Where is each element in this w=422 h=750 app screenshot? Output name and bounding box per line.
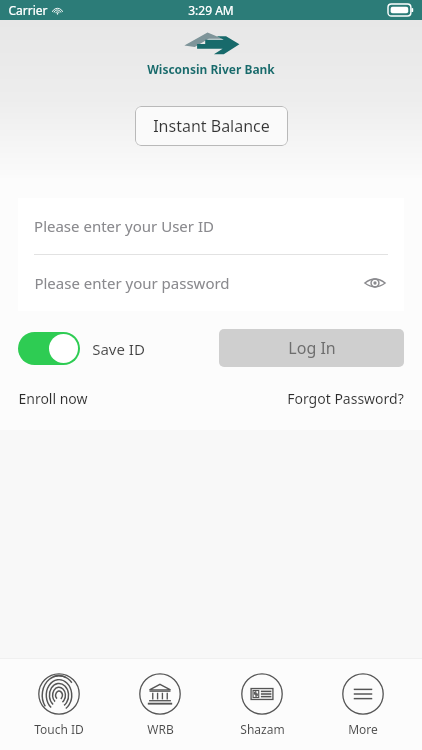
- staticText: Forgot Password?: [287, 389, 404, 408]
- button[interactable]: Please enter your password: [18, 255, 404, 311]
- staticText: Please enter your User ID: [34, 216, 214, 236]
- button[interactable]: Enroll now: [18, 389, 88, 408]
- button[interactable]: More: [320, 669, 406, 741]
- button[interactable]: Save ID: [18, 332, 145, 365]
- staticText: Wisconsin River Bank: [147, 61, 275, 77]
- staticText: Shazam: [240, 721, 285, 737]
- staticText: Carrier: [8, 2, 48, 18]
- button[interactable]: Instant Balance: [135, 106, 288, 146]
- staticText: More: [348, 721, 378, 737]
- button[interactable]: Log In: [219, 329, 404, 367]
- staticText: Please enter your password: [34, 273, 230, 293]
- button[interactable]: Shazam: [219, 669, 305, 741]
- staticText: Instant Balance: [153, 115, 270, 137]
- button[interactable]: Touch ID: [16, 669, 102, 741]
- staticText: Save ID: [92, 339, 145, 359]
- button[interactable]: Show password: [362, 270, 388, 296]
- button[interactable]: Forgot Password?: [287, 389, 404, 408]
- staticText: WRB: [147, 721, 174, 737]
- staticText: Touch ID: [34, 721, 84, 737]
- staticText: Enroll now: [18, 389, 88, 408]
- button[interactable]: WRB: [117, 669, 203, 741]
- staticText: Log In: [288, 337, 336, 359]
- button[interactable]: Please enter your User ID: [18, 198, 404, 254]
- staticText: 3:29 AM: [188, 2, 234, 18]
